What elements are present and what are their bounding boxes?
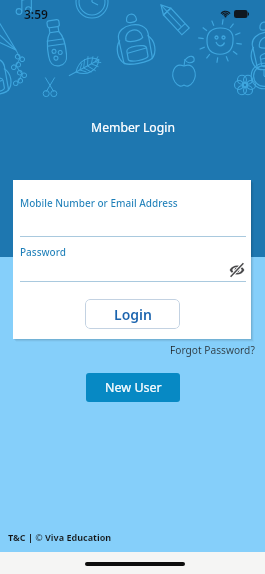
button[interactable]: Show password [229, 262, 245, 278]
staticText: Forgot Password? [170, 343, 255, 357]
button[interactable]: Forgot Password? [166, 341, 259, 359]
button[interactable]: Login [85, 299, 180, 329]
button[interactable]: Password [20, 245, 66, 259]
button[interactable]: New User [86, 373, 180, 402]
staticText: T&C | © Viva Education [8, 531, 112, 543]
staticText: 3:59 [24, 6, 48, 22]
staticText: New User [105, 379, 162, 396]
button[interactable]: Mobile Number or Email Address [20, 196, 178, 210]
button[interactable]: Member Login [91, 119, 175, 136]
staticText: Login [114, 305, 152, 324]
